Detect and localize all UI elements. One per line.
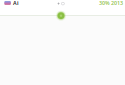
button[interactable]: App home	[3, 0, 20, 7]
staticText: 30% 2013	[99, 0, 123, 6]
button[interactable]: Progress	[55, 10, 66, 21]
staticText: Ai	[13, 0, 19, 7]
button[interactable]: More	[56, 1, 65, 6]
button[interactable]: 30% 2013	[98, 0, 124, 7]
